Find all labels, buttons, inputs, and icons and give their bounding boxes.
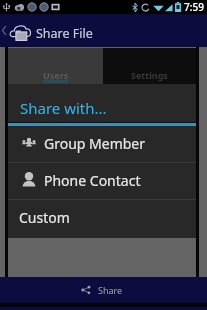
staticText: Phone Contact bbox=[44, 171, 141, 190]
button[interactable]: Settings bbox=[103, 48, 196, 84]
button[interactable]: Group Member bbox=[8, 126, 196, 162]
staticText: Share with... bbox=[20, 98, 107, 118]
staticText: Group Member bbox=[44, 134, 146, 153]
staticText: 7:59 bbox=[184, 0, 204, 14]
staticText: Settings bbox=[131, 69, 168, 81]
staticText: Share bbox=[98, 284, 123, 296]
button[interactable]: Share bbox=[8, 277, 196, 303]
button[interactable]: Phone Contact bbox=[8, 163, 196, 199]
staticText: Share File bbox=[36, 25, 93, 42]
button[interactable]: Users bbox=[8, 48, 103, 84]
staticText: Custom bbox=[19, 208, 70, 227]
button[interactable]: Share File bbox=[0, 14, 207, 47]
button[interactable]: Custom bbox=[8, 200, 196, 236]
staticText: Users bbox=[43, 69, 69, 81]
